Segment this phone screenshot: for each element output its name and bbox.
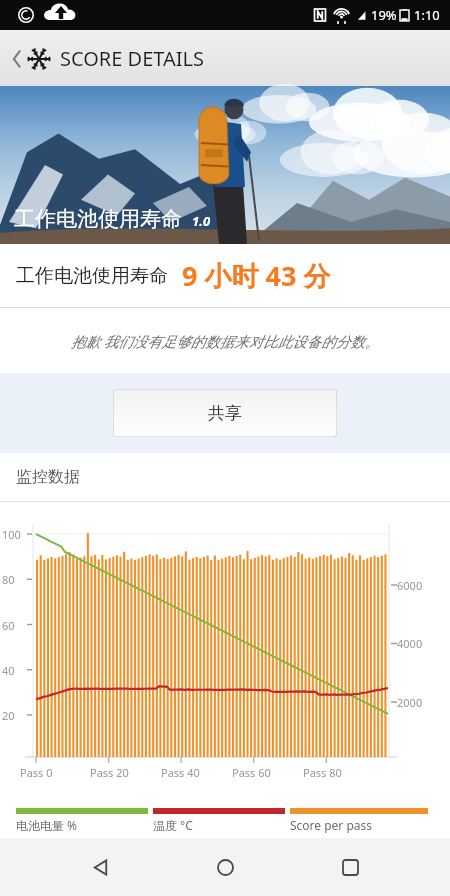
staticText: Pass 60 [232,765,271,780]
staticText: Score per pass [290,817,373,833]
button[interactable]: Back [77,843,125,891]
staticText: 工作电池使用寿命 [14,206,182,232]
staticText: 19% [371,6,397,24]
button[interactable]: Back [10,45,205,72]
staticText: 60 [2,618,15,633]
staticText: 20 [2,708,15,723]
staticText: Pass 20 [90,765,129,780]
staticText: 1.0 [192,212,211,230]
staticText: Pass 80 [303,765,342,780]
staticText: Pass 0 [20,765,53,780]
staticText: Pass 40 [161,765,200,780]
staticText: SCORE DETAILS [60,45,205,72]
staticText: 温度 °C [153,817,193,833]
staticText: 工作电池使用寿命 [16,264,168,288]
staticText: 抱歉 我们没有足够的数据来对比此设备的分数。 [71,331,380,351]
staticText: 4000 [397,636,423,651]
staticText: 6000 [397,578,423,593]
button[interactable]: Recent apps [326,843,374,891]
button[interactable]: Home [201,843,249,891]
staticText: 1:10 [414,6,440,24]
staticText: 80 [2,572,15,587]
button[interactable]: 工作电池使用寿命 [16,244,450,307]
staticText: 40 [2,663,15,678]
staticText: 100 [2,527,21,542]
staticText: 监控数据 [16,467,80,487]
staticText: 2000 [397,695,423,710]
staticText: 共享 [208,403,242,424]
staticText: 电池电量 % [16,817,78,833]
staticText: 9 小时 43 分 [182,257,331,294]
button[interactable]: 共享 [113,389,337,437]
